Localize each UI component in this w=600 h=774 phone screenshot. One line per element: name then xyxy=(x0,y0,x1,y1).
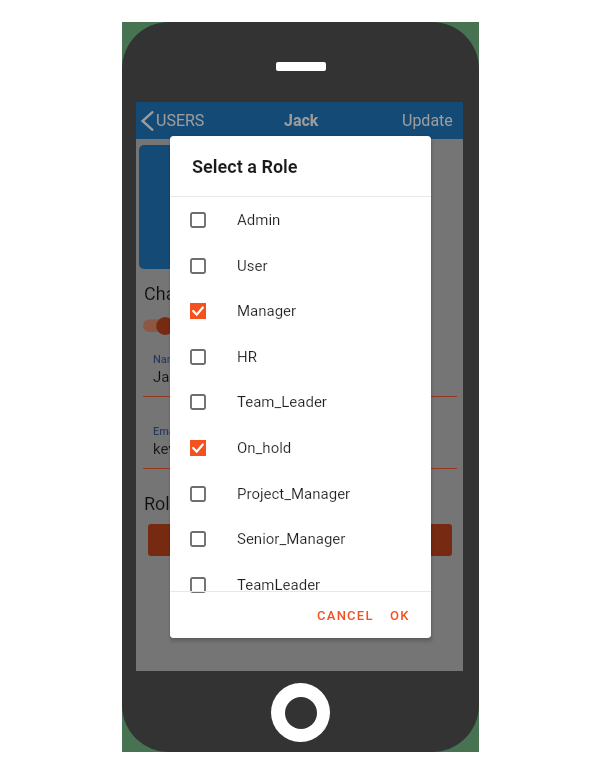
staticText: Manager xyxy=(237,302,297,320)
staticText: Email xyxy=(153,425,181,438)
staticText: TeamLeader xyxy=(237,576,321,594)
staticText: Name xyxy=(153,353,183,366)
staticText: USERS xyxy=(156,111,205,130)
staticText: CANCEL xyxy=(317,608,374,623)
staticText: Team_Leader xyxy=(237,393,327,411)
button[interactable]: Toggle status xyxy=(143,316,173,336)
button[interactable]: CANCEL xyxy=(307,592,384,638)
button[interactable]: Project_Manager xyxy=(170,471,431,517)
staticText: On_hold xyxy=(237,439,292,457)
staticText: Admin xyxy=(237,211,281,229)
staticText: Roles xyxy=(144,493,189,514)
button[interactable]: Team_Leader xyxy=(170,379,431,425)
staticText: User xyxy=(237,257,268,275)
button[interactable]: Manager xyxy=(170,288,431,334)
button[interactable]: Home xyxy=(271,683,330,742)
staticText: OK xyxy=(390,608,410,623)
button[interactable]: HR xyxy=(170,334,431,380)
staticText: Jack xyxy=(284,111,319,130)
button[interactable]: User xyxy=(170,243,431,289)
button[interactable]: On_hold xyxy=(170,425,431,471)
staticText: Senior_Manager xyxy=(237,530,346,548)
button[interactable]: SELECT ROLE xyxy=(148,524,452,556)
staticText: Jack xyxy=(153,368,185,386)
button[interactable]: Update xyxy=(392,102,463,139)
staticText: kevin@example.com xyxy=(153,440,292,458)
button[interactable]: OK xyxy=(380,592,420,638)
button[interactable]: TeamLeader xyxy=(170,562,431,608)
button[interactable]: Senior_Manager xyxy=(170,516,431,562)
button[interactable]: Back to Users xyxy=(139,102,207,139)
staticText: Update xyxy=(402,111,453,130)
staticText: HR xyxy=(237,348,257,366)
staticText: Project_Manager xyxy=(237,485,351,503)
staticText: Select a Role xyxy=(192,156,298,177)
staticText: SELECT ROLE xyxy=(255,533,346,548)
staticText: Change Status xyxy=(144,283,261,304)
button[interactable]: Admin xyxy=(170,197,431,243)
